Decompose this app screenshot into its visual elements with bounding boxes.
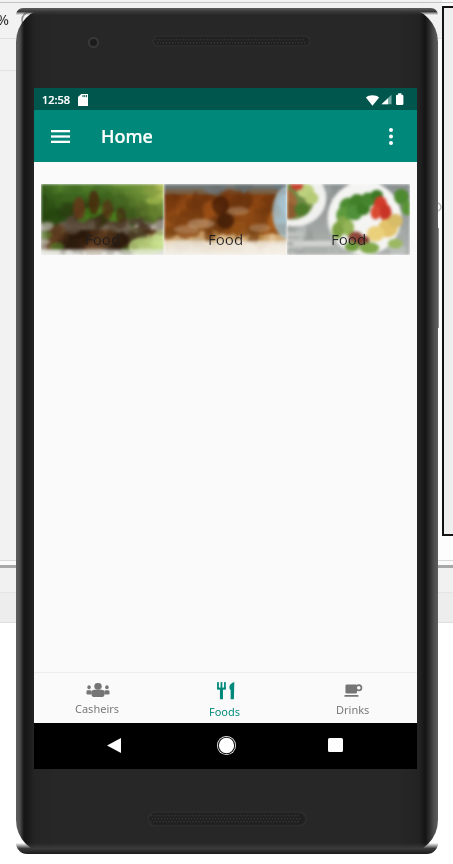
button[interactable]: Menu — [40, 116, 80, 156]
button[interactable]: Food — [164, 184, 287, 255]
staticText: % — [0, 10, 9, 29]
button[interactable]: Drinks — [289, 673, 417, 723]
staticText: Food — [331, 229, 367, 249]
staticText: Food — [208, 229, 244, 249]
button[interactable]: More options — [373, 118, 409, 154]
button[interactable]: Foods — [161, 673, 289, 723]
staticText: Drinks — [336, 702, 370, 717]
staticText: Food — [85, 229, 121, 249]
button[interactable]: Recent apps — [318, 728, 352, 762]
button[interactable]: Home — [209, 728, 243, 762]
staticText: Casheirs — [75, 701, 120, 716]
button[interactable]: Casheirs — [34, 673, 161, 723]
button[interactable]: Back — [97, 728, 131, 762]
staticText: Home — [101, 124, 153, 149]
button[interactable]: Food — [41, 184, 164, 255]
staticText: Foods — [209, 704, 241, 719]
staticText: 12:58 — [42, 92, 71, 107]
button[interactable]: Food — [287, 184, 410, 255]
